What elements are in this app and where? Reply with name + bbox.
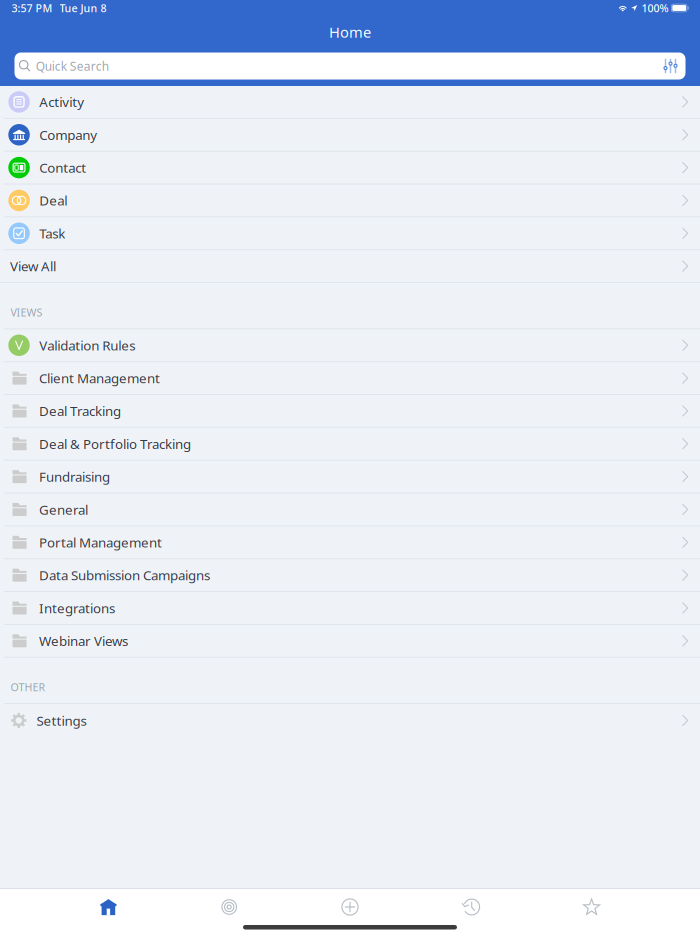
button[interactable]: Activity xyxy=(0,86,700,119)
button[interactable]: Create xyxy=(290,889,410,925)
staticText: Quick Search xyxy=(36,58,109,74)
staticText: Task xyxy=(39,224,65,242)
staticText: General xyxy=(39,501,88,518)
staticText: Home xyxy=(329,22,371,42)
button[interactable]: Favorites xyxy=(531,889,652,925)
button[interactable]: Integrations xyxy=(0,592,700,625)
button[interactable]: Deal xyxy=(0,184,700,217)
button[interactable]: General xyxy=(0,493,700,526)
button[interactable]: Home xyxy=(48,889,169,925)
button[interactable]: Deal Tracking xyxy=(0,395,700,428)
staticText: Validation Rules xyxy=(39,336,135,354)
button[interactable]: Deal & Portfolio Tracking xyxy=(0,428,700,461)
button[interactable]: Recents xyxy=(410,889,531,925)
staticText: Fundraising xyxy=(39,468,110,485)
button[interactable]: Webinar Views xyxy=(0,625,700,658)
button[interactable]: View All xyxy=(0,250,700,283)
staticText: 100% xyxy=(641,1,668,15)
button[interactable]: Data Submission Campaigns xyxy=(0,559,700,592)
staticText: Portal Management xyxy=(39,533,162,551)
staticText: VIEWS xyxy=(10,305,42,319)
staticText: Webinar Views xyxy=(39,632,128,650)
staticText: OTHER xyxy=(10,680,45,694)
button[interactable]: Task xyxy=(0,217,700,250)
button[interactable]: Contact xyxy=(0,152,700,184)
button[interactable]: Validation Rules xyxy=(0,329,700,362)
button[interactable]: Portal Management xyxy=(0,526,700,559)
button[interactable]: Search filters xyxy=(663,58,685,73)
staticText: Integrations xyxy=(39,599,115,617)
button[interactable]: Client Management xyxy=(0,362,700,395)
staticText: Deal & Portfolio Tracking xyxy=(39,435,191,453)
button[interactable]: Settings xyxy=(0,704,700,737)
staticText: Client Management xyxy=(39,369,160,387)
button[interactable]: Fundraising xyxy=(0,461,700,493)
staticText: Tue Jun 8 xyxy=(59,1,106,15)
staticText: Settings xyxy=(36,712,86,729)
staticText: Contact xyxy=(39,159,86,176)
staticText: Data Submission Campaigns xyxy=(39,566,210,584)
staticText: 3:57 PM xyxy=(11,1,52,15)
button[interactable]: Company xyxy=(0,119,700,152)
staticText: Company xyxy=(39,126,97,144)
staticText: Deal Tracking xyxy=(39,402,121,420)
staticText: Deal xyxy=(39,192,67,209)
staticText: Activity xyxy=(39,93,84,111)
staticText: View All xyxy=(10,257,56,275)
button[interactable]: Pipeline xyxy=(169,889,290,925)
